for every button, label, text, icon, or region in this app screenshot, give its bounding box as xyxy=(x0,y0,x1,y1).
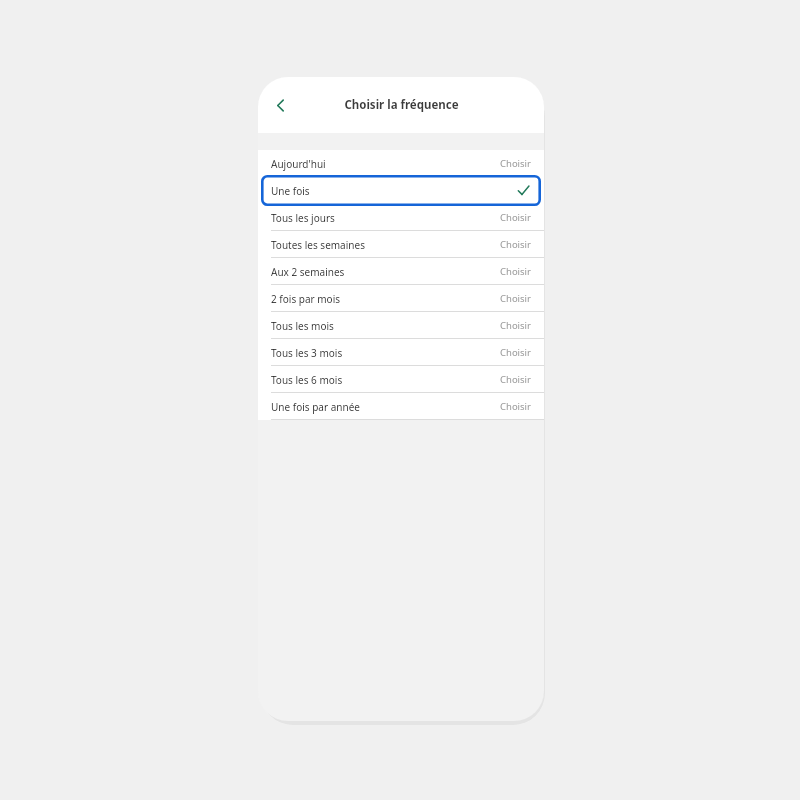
button[interactable]: Tous les jours xyxy=(258,204,544,231)
staticText: Choisir xyxy=(500,157,531,170)
staticText: Choisir xyxy=(500,265,531,278)
staticText: Choisir xyxy=(500,292,531,305)
staticText: Choisir xyxy=(500,211,531,224)
staticText: Choisir xyxy=(500,346,531,359)
staticText: Toutes les semaines xyxy=(271,238,365,252)
staticText: Tous les jours xyxy=(271,211,335,225)
staticText: Aux 2 semaines xyxy=(271,265,345,279)
staticText: Aujourd'hui xyxy=(271,157,326,171)
staticText: Tous les 6 mois xyxy=(271,373,343,387)
staticText: Choisir xyxy=(500,400,531,413)
button[interactable]: Aux 2 semaines xyxy=(258,258,544,285)
staticText: Choisir xyxy=(500,238,531,251)
button[interactable]: Toutes les semaines xyxy=(258,231,544,258)
staticText: Choisir xyxy=(500,373,531,386)
button[interactable]: Tous les 3 mois xyxy=(258,339,544,366)
button[interactable]: Back xyxy=(263,88,297,122)
button[interactable]: Une fois par année xyxy=(258,393,544,420)
staticText: Choisir la fréquence xyxy=(344,97,459,113)
staticText: Tous les mois xyxy=(271,319,334,333)
staticText: Choisir xyxy=(500,319,531,332)
button[interactable]: Aujourd'hui xyxy=(258,150,544,177)
staticText: Une fois par année xyxy=(271,400,360,414)
button[interactable]: 2 fois par mois xyxy=(258,285,544,312)
button[interactable]: Tous les 6 mois xyxy=(258,366,544,393)
staticText: 2 fois par mois xyxy=(271,292,341,306)
button[interactable]: Une fois xyxy=(258,177,544,204)
button[interactable]: Tous les mois xyxy=(258,312,544,339)
staticText: Une fois xyxy=(271,184,310,198)
staticText: Tous les 3 mois xyxy=(271,346,343,360)
